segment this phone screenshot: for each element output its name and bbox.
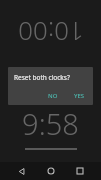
button[interactable]: 10:00 [0, 0, 101, 64]
staticText: 10:00 [18, 15, 84, 50]
staticText: 9:58 [22, 104, 79, 143]
button[interactable]: 9:58 [0, 104, 101, 150]
button[interactable]: Back [12, 162, 30, 180]
staticText: YES [74, 92, 85, 100]
button[interactable]: Home [42, 162, 60, 180]
staticText: Reset both clocks? [14, 73, 70, 82]
button[interactable]: YES [70, 90, 89, 102]
button[interactable]: Recent apps [71, 162, 89, 180]
button[interactable]: NO [44, 90, 62, 102]
staticText: NO [48, 92, 58, 100]
